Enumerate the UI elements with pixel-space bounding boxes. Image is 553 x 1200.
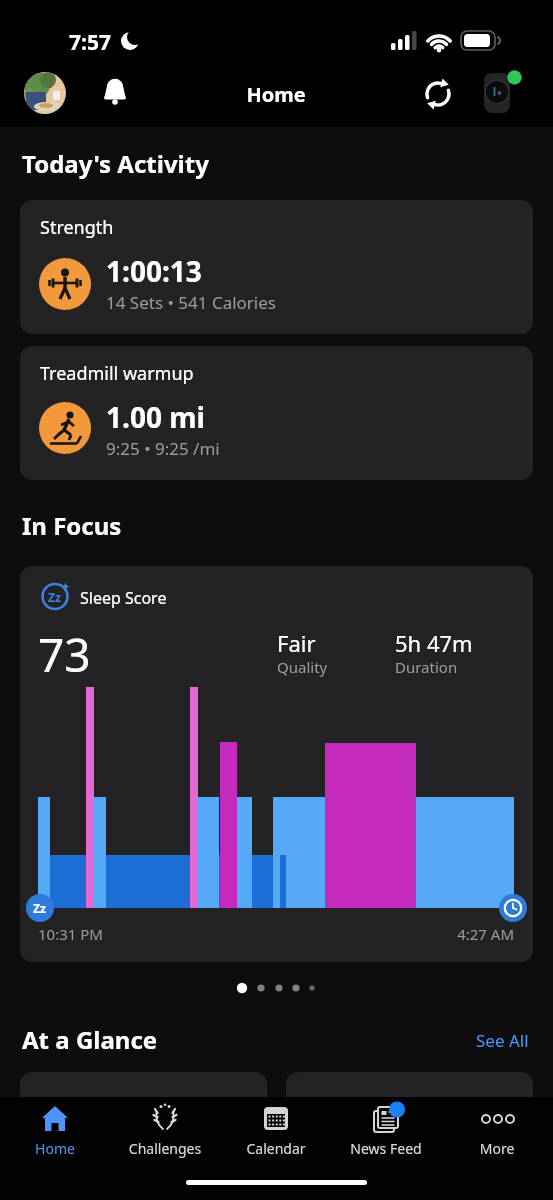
staticText: Home — [25, 1139, 85, 1158]
staticText: See All — [476, 1029, 529, 1052]
staticText: At a Glance — [22, 1023, 158, 1056]
staticText: Zz — [48, 589, 61, 605]
staticText: Today's Activity — [22, 147, 209, 180]
staticText: 7:57 — [69, 28, 111, 57]
staticText: Duration — [395, 657, 458, 677]
staticText: 9:25 • 9:25 /mi — [106, 437, 220, 460]
button[interactable] — [421, 77, 455, 111]
staticText: Challenges — [125, 1139, 205, 1158]
button[interactable] — [100, 76, 132, 108]
staticText: 1.00 mi — [106, 398, 205, 436]
button[interactable] — [241, 1100, 311, 1160]
button[interactable] — [20, 566, 533, 962]
staticText: 5h 47m — [395, 628, 473, 658]
button[interactable] — [20, 200, 533, 334]
staticText: Home — [216, 81, 336, 108]
staticText: Zz — [33, 900, 46, 916]
button[interactable] — [286, 1072, 533, 1112]
button[interactable] — [125, 1100, 205, 1160]
button[interactable] — [24, 72, 66, 114]
staticText: News Feed — [346, 1139, 426, 1158]
staticText: Fair — [277, 628, 316, 658]
button[interactable] — [25, 1100, 85, 1160]
button[interactable] — [467, 1100, 527, 1160]
button[interactable] — [20, 1072, 267, 1112]
staticText: 4:27 AM — [394, 924, 514, 944]
staticText: 1:00:13 — [106, 252, 202, 290]
staticText: 73 — [38, 623, 91, 686]
button[interactable]: See All — [476, 1029, 529, 1052]
staticText: Sleep Score — [80, 587, 167, 609]
staticText: Strength — [40, 215, 114, 240]
button[interactable] — [20, 346, 533, 480]
button[interactable] — [346, 1100, 426, 1160]
staticText: 14 Sets • 541 Calories — [106, 291, 276, 314]
staticText: Calendar — [241, 1139, 311, 1158]
button[interactable] — [480, 70, 526, 116]
staticText: 10:31 PM — [38, 924, 103, 944]
staticText: More — [467, 1139, 527, 1158]
staticText: In Focus — [22, 509, 122, 542]
staticText: Quality — [277, 657, 328, 677]
staticText: Treadmill warmup — [40, 361, 194, 386]
